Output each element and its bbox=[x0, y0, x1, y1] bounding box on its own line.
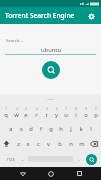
staticText: t bbox=[45, 111, 48, 119]
staticText: 1 bbox=[5, 107, 7, 111]
staticText: 5 bbox=[46, 107, 48, 111]
staticText: Torrent Search Engine bbox=[5, 11, 75, 20]
staticText: a bbox=[9, 125, 13, 133]
staticText: p bbox=[94, 111, 98, 119]
staticText: 0 bbox=[95, 107, 97, 111]
button[interactable]: 1 bbox=[0, 105, 11, 121]
staticText: j bbox=[70, 125, 72, 133]
staticText: c bbox=[37, 140, 40, 148]
button[interactable]: k bbox=[76, 121, 86, 136]
button[interactable]: z bbox=[13, 136, 23, 151]
staticText: n bbox=[69, 140, 73, 148]
staticText: u bbox=[64, 111, 68, 119]
button[interactable]: Back bbox=[16, 167, 29, 180]
button[interactable]: b bbox=[54, 136, 65, 151]
staticText: v bbox=[47, 140, 50, 148]
staticText: 6 bbox=[56, 107, 58, 111]
staticText: 3 bbox=[25, 107, 27, 111]
staticText: w bbox=[14, 111, 19, 119]
button[interactable]: g bbox=[46, 121, 56, 136]
button[interactable]: c bbox=[33, 136, 43, 151]
button[interactable]: , bbox=[18, 151, 27, 167]
staticText: 4 bbox=[36, 107, 38, 111]
staticText: r bbox=[35, 111, 38, 119]
button[interactable]: 8 bbox=[71, 105, 81, 121]
staticText: d bbox=[29, 125, 33, 133]
staticText: x bbox=[26, 140, 30, 148]
staticText: 8 bbox=[75, 107, 77, 111]
button[interactable]: 6 bbox=[51, 105, 61, 121]
button[interactable]: Shift bbox=[0, 136, 13, 151]
staticText: g bbox=[49, 125, 53, 133]
button[interactable]: l bbox=[86, 121, 96, 136]
button[interactable]: a bbox=[5, 121, 16, 136]
button[interactable]: 7 bbox=[61, 105, 71, 121]
button[interactable]: Search bbox=[42, 61, 60, 79]
staticText: s bbox=[20, 125, 23, 133]
staticText: 9 bbox=[85, 107, 87, 111]
staticText: k bbox=[79, 125, 83, 133]
staticText: . bbox=[78, 156, 80, 163]
staticText: 7 bbox=[65, 107, 67, 111]
button[interactable]: 4 bbox=[31, 105, 41, 121]
button[interactable]: f bbox=[36, 121, 46, 136]
staticText: o bbox=[84, 111, 88, 119]
button[interactable]: 2 bbox=[11, 105, 21, 121]
staticText: ?123 bbox=[6, 157, 15, 162]
staticText: y bbox=[55, 111, 58, 119]
button[interactable]: Recents bbox=[73, 167, 86, 180]
staticText: Search... bbox=[6, 38, 23, 44]
button[interactable]: Search key bbox=[83, 151, 99, 167]
staticText: h bbox=[59, 125, 63, 133]
button[interactable]: Home bbox=[44, 167, 57, 180]
button[interactable]: 3 bbox=[21, 105, 31, 121]
button[interactable]: 9 bbox=[81, 105, 91, 121]
button[interactable]: v bbox=[43, 136, 54, 151]
staticText: f bbox=[40, 125, 42, 133]
button[interactable]: 0 bbox=[91, 105, 101, 121]
staticText: z bbox=[17, 140, 20, 148]
button[interactable]: h bbox=[56, 121, 66, 136]
staticText: m bbox=[79, 140, 85, 148]
button[interactable]: Settings bbox=[85, 10, 97, 22]
button[interactable]: n bbox=[65, 136, 76, 151]
staticText: e bbox=[24, 111, 28, 119]
button[interactable]: m bbox=[76, 136, 87, 151]
button[interactable]: s bbox=[16, 121, 26, 136]
button[interactable]: Torrent Search Engine bbox=[0, 7, 101, 24]
staticText: l bbox=[90, 125, 92, 133]
button[interactable]: ubuntu bbox=[6, 45, 95, 54]
button[interactable]: j bbox=[66, 121, 76, 136]
button[interactable]: Backspace bbox=[87, 136, 101, 151]
staticText: 2 bbox=[16, 107, 18, 111]
staticText: i bbox=[75, 111, 77, 119]
staticText: b bbox=[58, 140, 62, 148]
staticText: q bbox=[4, 111, 8, 119]
button[interactable]: x bbox=[23, 136, 33, 151]
staticText: , bbox=[22, 156, 24, 163]
staticText: ubuntu bbox=[41, 46, 61, 54]
button[interactable]: 5 bbox=[41, 105, 51, 121]
button[interactable]: ?123 bbox=[2, 151, 18, 167]
button[interactable]: d bbox=[26, 121, 36, 136]
